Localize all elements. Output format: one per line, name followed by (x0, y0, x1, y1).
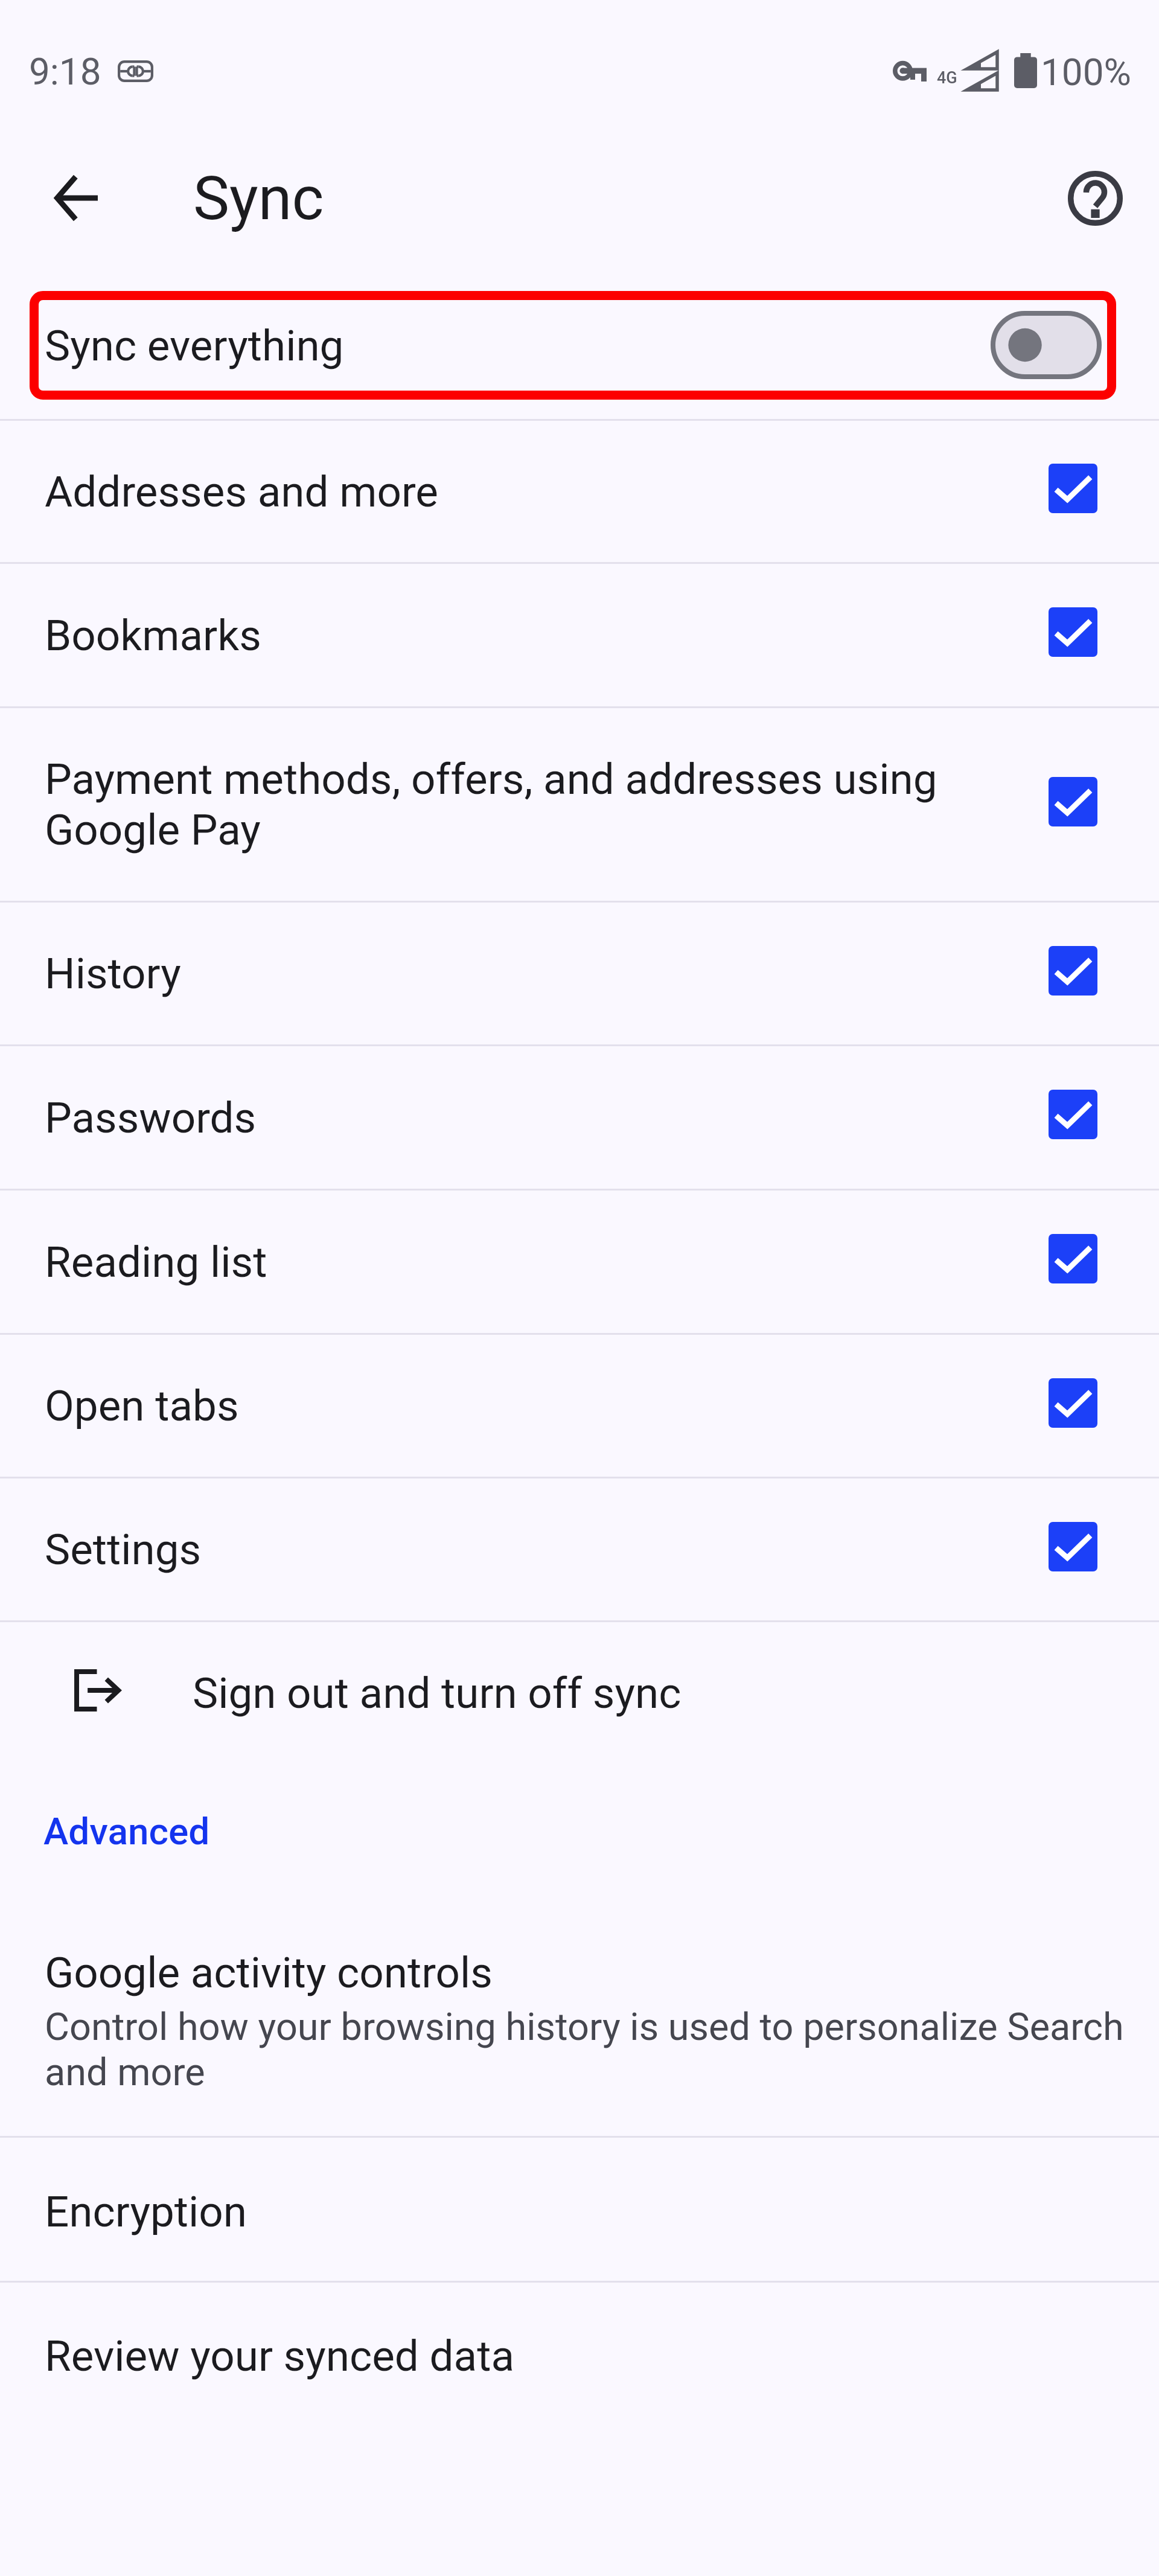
staticText: Open tabs (45, 1381, 1000, 1431)
staticText: Sign out and turn off sync (193, 1668, 682, 1718)
staticText: 9:18 (29, 50, 101, 94)
staticText: Reading list (45, 1237, 1000, 1287)
button[interactable]: Back (35, 157, 117, 238)
button[interactable]: History (0, 903, 1159, 1044)
button[interactable]: Help (1055, 158, 1136, 239)
staticText: Sync (193, 162, 324, 234)
button[interactable]: Bookmarks (0, 564, 1159, 706)
button[interactable]: Addresses and more (0, 421, 1159, 562)
button[interactable]: Open tabs (0, 1335, 1159, 1477)
button[interactable]: Google activity controls (0, 1878, 1159, 2136)
staticText: Bookmarks (45, 610, 1000, 660)
staticText: Review your synced data (45, 2331, 515, 2381)
staticText: Google activity controls (45, 1948, 493, 1998)
staticText: Payment methods, offers, and addresses u… (45, 754, 1000, 855)
staticText: Addresses and more (45, 467, 1000, 517)
button[interactable]: Encryption (0, 2138, 1159, 2281)
button[interactable]: Settings (0, 1478, 1159, 1620)
button[interactable]: Sync everything (0, 266, 1159, 419)
staticText: Passwords (45, 1093, 1000, 1143)
button[interactable]: Payment methods, offers, and addresses u… (0, 708, 1159, 901)
staticText: Sync everything (45, 321, 344, 371)
staticText: Encryption (45, 2187, 247, 2237)
button[interactable]: Passwords (0, 1046, 1159, 1189)
staticText: Advanced (43, 1809, 210, 1853)
staticText: 100% (1041, 50, 1131, 94)
button[interactable]: Review your synced data (0, 2283, 1159, 2424)
staticText: 4G (937, 68, 957, 88)
staticText: History (45, 948, 1000, 999)
button[interactable]: Reading list (0, 1191, 1159, 1333)
staticText: Control how your browsing history is use… (45, 2005, 1125, 2094)
button[interactable]: Sign out and turn off sync (0, 1622, 1159, 1763)
staticText: Settings (45, 1524, 1000, 1574)
